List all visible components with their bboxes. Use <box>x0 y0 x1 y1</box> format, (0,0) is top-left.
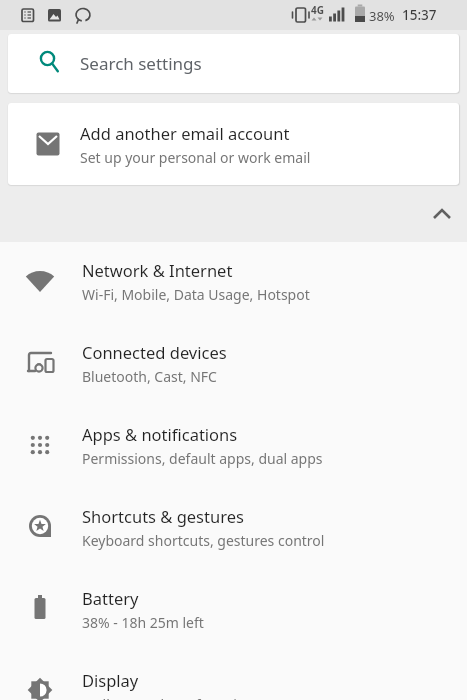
staticText: Wi-Fi, Mobile, Data Usage, Hotspot <box>82 285 310 304</box>
button[interactable]: Apps & notifications <box>0 406 467 488</box>
button[interactable]: Shortcuts & gestures <box>0 488 467 570</box>
button[interactable]: Battery <box>0 570 467 652</box>
staticText: Keyboard shortcuts, gestures control <box>82 531 325 550</box>
staticText: 38% <box>369 7 395 25</box>
button[interactable]: Connected devices <box>0 324 467 406</box>
button[interactable]: Display <box>0 652 467 700</box>
staticText: Wallpaper, sleep, font size <box>82 695 252 700</box>
staticText: Search settings <box>80 52 202 75</box>
button[interactable]: Search settings <box>8 34 459 93</box>
button[interactable]: Add another email account <box>8 103 459 185</box>
staticText: Apps & notifications <box>82 423 238 445</box>
staticText: 15:37 <box>402 6 437 24</box>
staticText: 38% - 18h 25m left <box>82 613 204 632</box>
staticText: Bluetooth, Cast, NFC <box>82 367 217 386</box>
staticText: Permissions, default apps, dual apps <box>82 449 323 468</box>
staticText: Set up your personal or work email <box>80 148 311 167</box>
button[interactable]: Network & Internet <box>0 242 467 324</box>
staticText: 4G <box>311 3 324 17</box>
staticText: Network & Internet <box>82 259 233 281</box>
staticText: Add another email account <box>80 122 290 144</box>
staticText: Connected devices <box>82 341 227 363</box>
button[interactable] <box>0 185 467 242</box>
staticText: Battery <box>82 587 139 609</box>
staticText: Shortcuts & gestures <box>82 505 244 527</box>
staticText: Display <box>82 669 139 691</box>
